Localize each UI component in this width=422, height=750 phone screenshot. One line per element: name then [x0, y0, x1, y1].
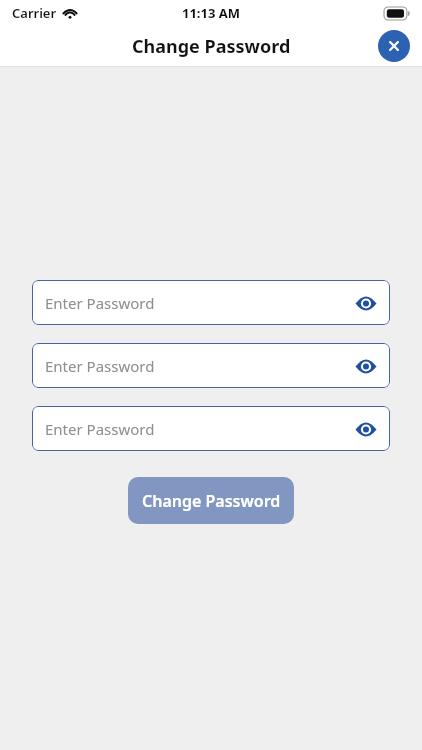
staticText: Enter Password: [45, 419, 353, 439]
button[interactable]: Show password: [353, 353, 379, 379]
button[interactable]: Show password: [353, 416, 379, 442]
button[interactable]: Enter Password: [32, 406, 390, 451]
staticText: Enter Password: [45, 293, 353, 313]
staticText: Change Password: [132, 34, 291, 59]
staticText: Enter Password: [45, 356, 353, 376]
button[interactable]: Change Password: [128, 477, 294, 524]
button[interactable]: Enter Password: [32, 343, 390, 388]
button[interactable]: Close: [378, 30, 410, 62]
button[interactable]: Enter Password: [32, 280, 390, 325]
staticText: Change Password: [142, 490, 281, 512]
staticText: 11:13 AM: [182, 4, 241, 22]
staticText: Carrier: [12, 4, 57, 22]
button[interactable]: Show password: [353, 290, 379, 316]
